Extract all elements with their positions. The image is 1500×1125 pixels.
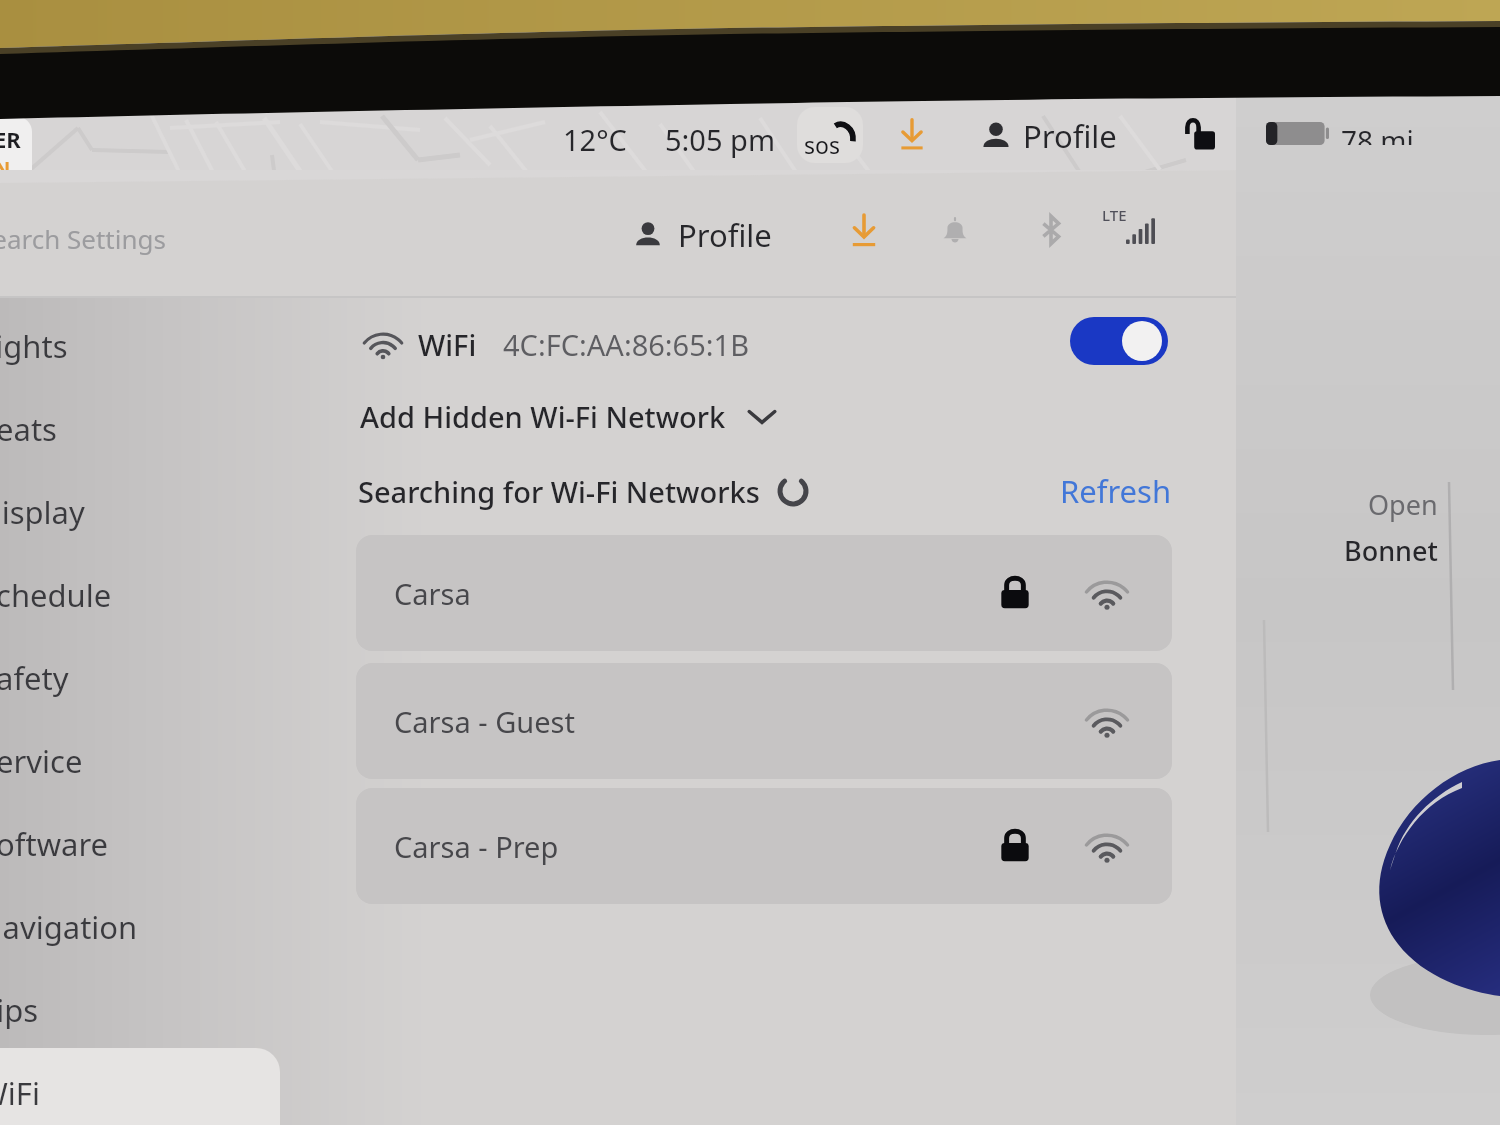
button[interactable]: Carsa	[356, 535, 1172, 651]
button[interactable]: Cellular LTE	[1100, 202, 1160, 250]
staticText: 78 mi	[1341, 121, 1414, 145]
staticText: N	[0, 155, 11, 182]
staticText: Searching for Wi-Fi Networks	[358, 472, 760, 511]
staticText: Display	[0, 491, 85, 533]
button[interactable]: Bluetooth	[1032, 211, 1070, 249]
staticText: Tips	[0, 989, 39, 1031]
staticText: sos	[804, 129, 840, 160]
button[interactable]: Unlock	[1181, 114, 1221, 154]
staticText: Seats	[0, 408, 57, 450]
button[interactable]: Profile	[632, 212, 772, 258]
staticText: Carsa	[394, 574, 471, 613]
staticText: Service	[0, 740, 83, 782]
button[interactable]: Carsa - Guest	[356, 663, 1172, 779]
staticText: LTE	[1102, 205, 1127, 225]
staticText: Safety	[0, 657, 69, 699]
button[interactable]: Service	[0, 716, 280, 796]
staticText: 12°C	[563, 120, 627, 159]
staticText: Profile	[1023, 115, 1117, 157]
button[interactable]: Downloads	[844, 211, 884, 251]
button[interactable]: Navigation	[0, 882, 280, 962]
button[interactable]: Lights	[0, 301, 280, 381]
button[interactable]: Notifications	[937, 212, 973, 248]
button[interactable]: SOS emergency call	[797, 107, 863, 163]
button[interactable]: Refresh	[1060, 468, 1172, 514]
button[interactable]: Navigation card	[0, 116, 32, 186]
staticText: WiFi	[418, 325, 477, 364]
staticText: Carsa - Guest	[394, 702, 575, 741]
button[interactable]: Software	[0, 799, 280, 879]
staticText: Lights	[0, 325, 68, 367]
staticText: Schedule	[0, 574, 112, 616]
staticText: Add Hidden Wi-Fi Network	[360, 397, 726, 436]
staticText: Navigation	[0, 906, 138, 948]
staticText: Refresh	[1060, 470, 1172, 512]
button[interactable]: Open	[1250, 486, 1438, 569]
staticText: 4C:FC:AA:86:65:1B	[503, 325, 750, 364]
button[interactable]: Software update	[893, 116, 931, 154]
staticText: 5:05 pm	[665, 120, 776, 159]
button[interactable]: WiFi	[362, 320, 750, 368]
button[interactable]: WiFi	[0, 1048, 280, 1125]
button[interactable]: WiFi on	[1070, 317, 1168, 365]
button[interactable]: Carsa - Prep	[356, 788, 1172, 904]
button[interactable]: Safety	[0, 633, 280, 713]
button[interactable]: Tips	[0, 965, 280, 1045]
staticText: Profile	[678, 214, 772, 256]
button[interactable]: Search Settings	[0, 204, 320, 272]
staticText: Bonnet	[1344, 532, 1438, 569]
button[interactable]: Display	[0, 467, 280, 547]
staticText: WiFi	[0, 1072, 40, 1114]
button[interactable]: Add Hidden Wi-Fi Network	[360, 393, 778, 439]
staticText: Open	[1368, 486, 1438, 523]
staticText: Search Settings	[0, 221, 166, 256]
button[interactable]: Seats	[0, 384, 280, 464]
staticText: ER	[0, 124, 21, 154]
staticText: Software	[0, 823, 109, 865]
button[interactable]: Profile	[979, 114, 1117, 158]
button[interactable]: Schedule	[0, 550, 280, 630]
staticText: Carsa - Prep	[394, 827, 559, 866]
